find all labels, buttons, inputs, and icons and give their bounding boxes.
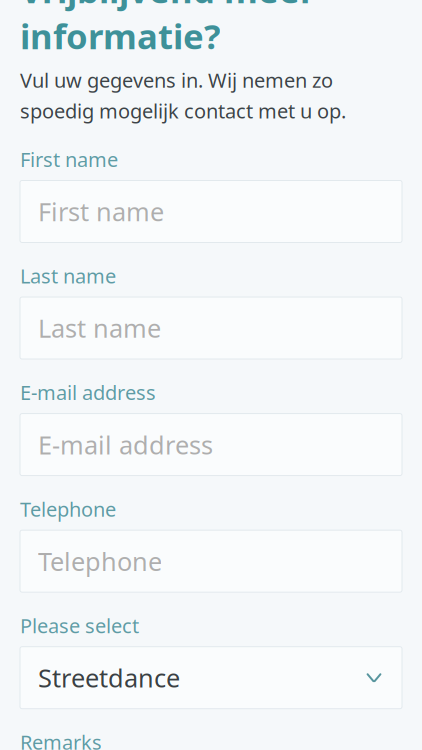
staticText: Remarks bbox=[20, 729, 102, 750]
button[interactable]: First name bbox=[20, 180, 402, 242]
button[interactable]: Last name bbox=[20, 297, 402, 359]
staticText: First name bbox=[20, 146, 118, 172]
staticText: Streetdance bbox=[38, 661, 180, 694]
staticText: Please select bbox=[20, 612, 139, 639]
staticText: E-mail address bbox=[38, 428, 213, 461]
staticText: Telephone bbox=[20, 496, 116, 522]
staticText: E-mail address bbox=[20, 379, 156, 406]
staticText: Last name bbox=[20, 262, 116, 289]
staticText: Vrijblijvend meer informatie? bbox=[20, 0, 315, 59]
staticText: First name bbox=[38, 195, 164, 228]
staticText: Last name bbox=[38, 311, 161, 345]
staticText: Telephone bbox=[38, 544, 162, 578]
button[interactable]: E-mail address bbox=[20, 414, 402, 476]
staticText: Vul uw gegevens in. Wij nemen zo spoedig… bbox=[20, 67, 346, 124]
button[interactable]: Telephone bbox=[20, 530, 402, 592]
button[interactable]: Streetdance bbox=[20, 647, 402, 709]
